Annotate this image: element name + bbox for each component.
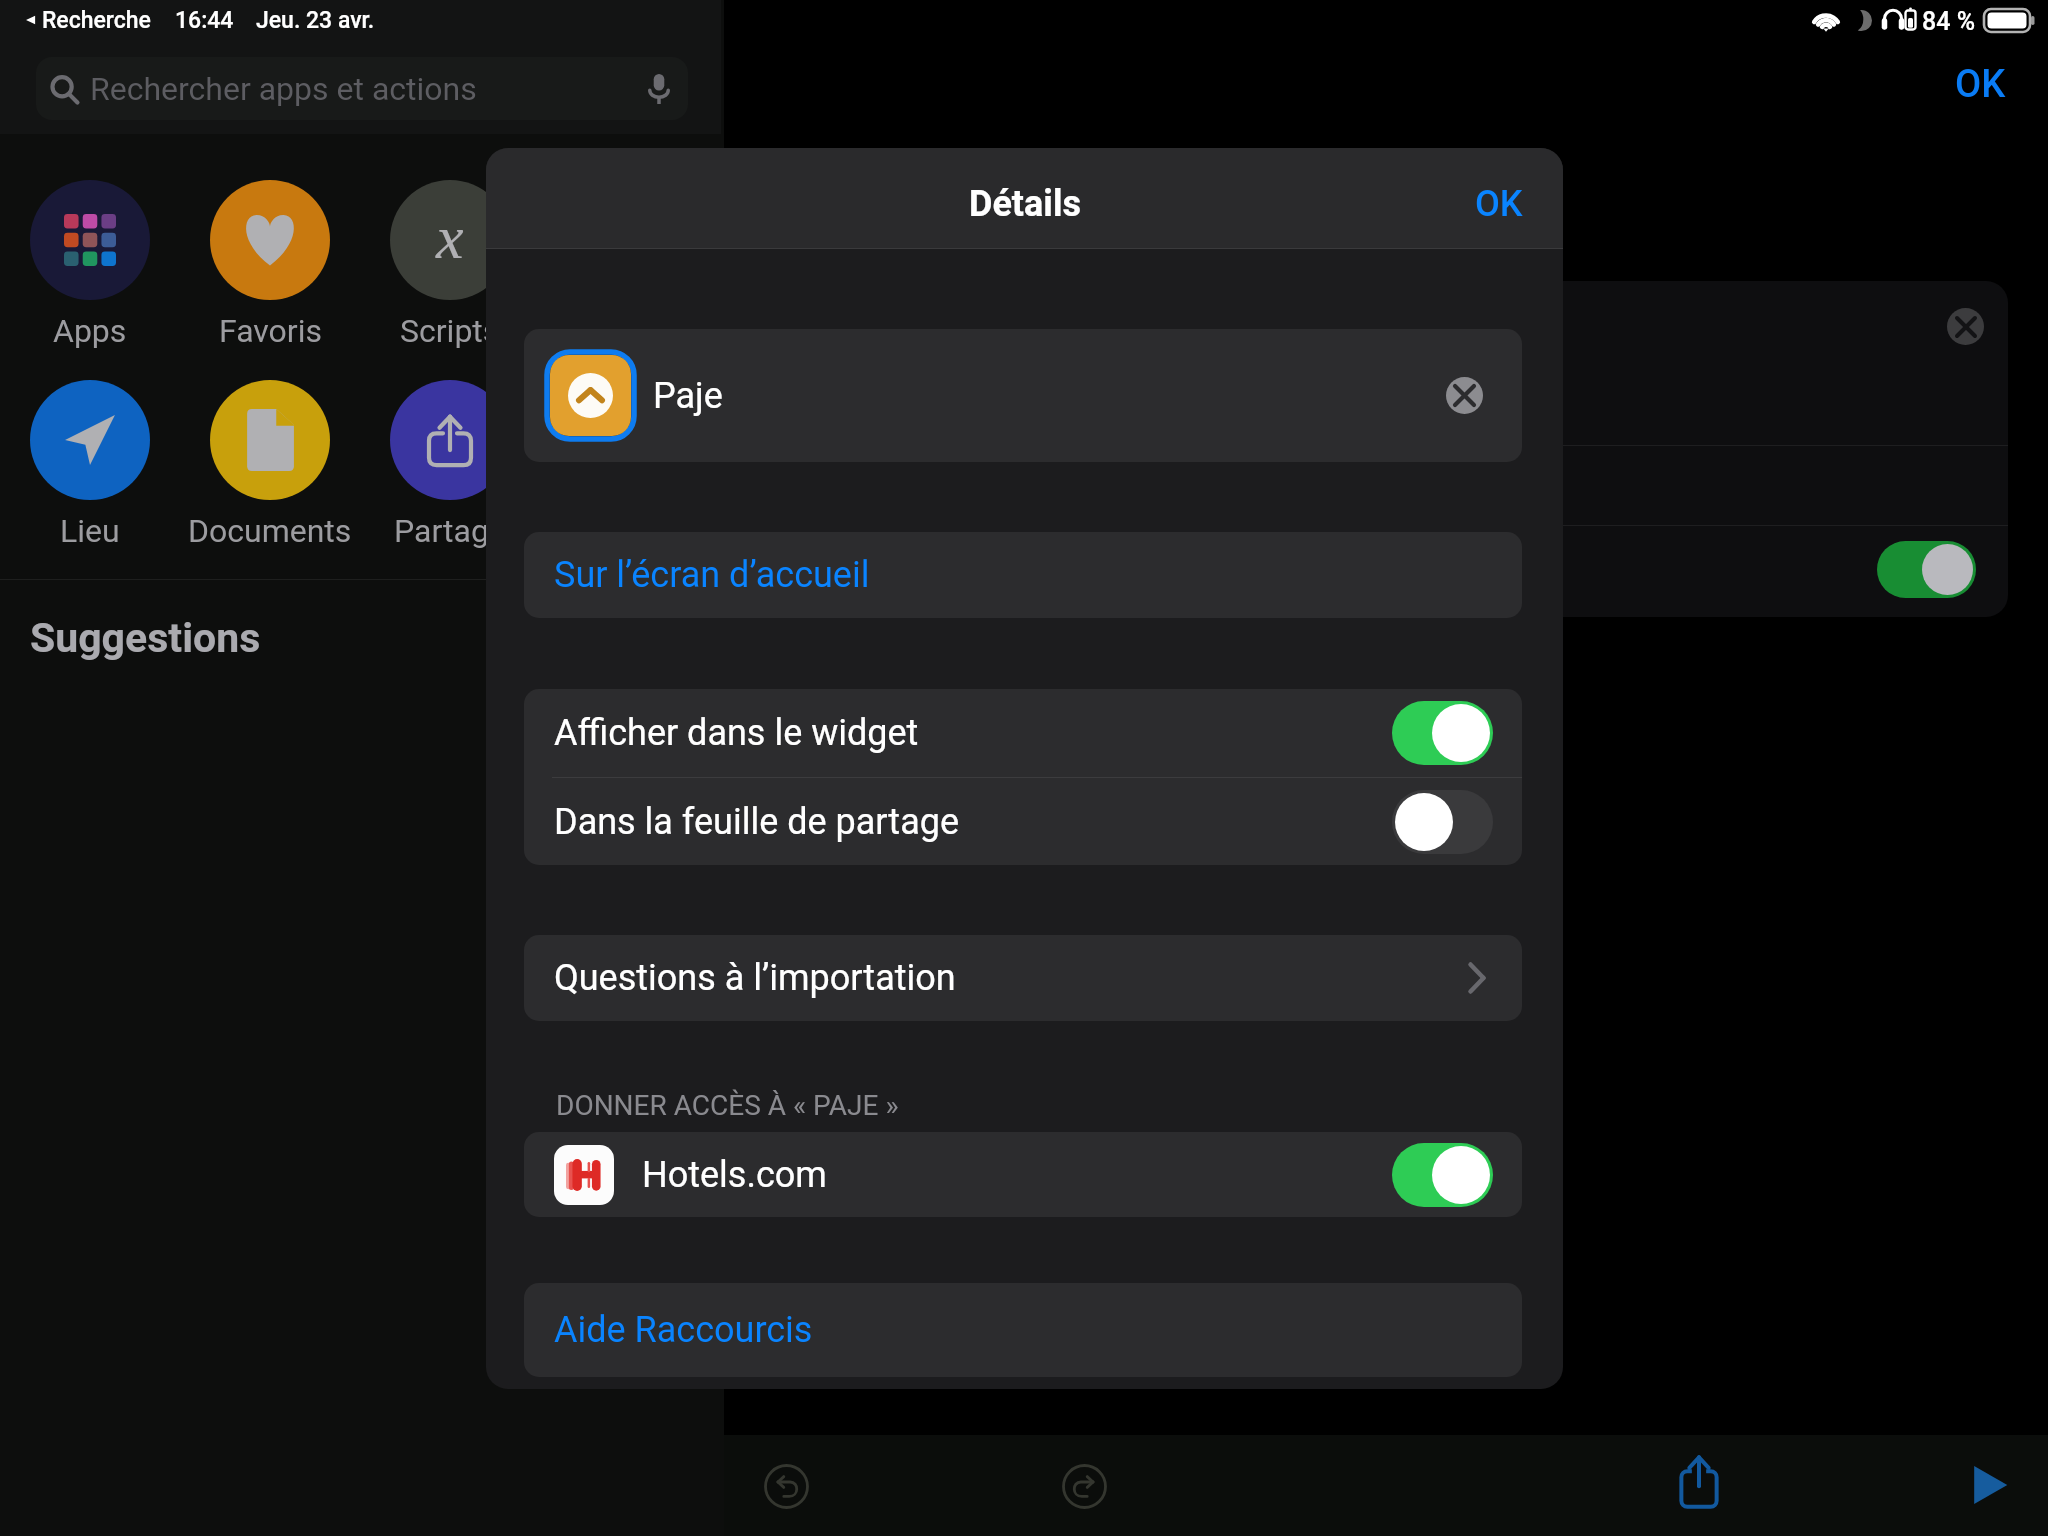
button[interactable]: Rétablir [1062, 1464, 1107, 1509]
button[interactable]: Hotels.com [524, 1132, 1522, 1217]
staticText: Suggestions [30, 614, 261, 662]
button[interactable]: Rechercher apps et actions [36, 57, 688, 120]
button[interactable]: x [360, 180, 540, 350]
button[interactable]: Documents [180, 380, 360, 550]
staticText: Afficher dans le widget [554, 712, 919, 754]
button[interactable]: Activé [1392, 701, 1493, 765]
staticText: Sur l’écran d’accueil [554, 554, 870, 596]
staticText: Favoris [219, 312, 322, 350]
staticText: OK [1955, 62, 2006, 107]
staticText: Recherche [42, 7, 151, 34]
staticText: Lieu [60, 512, 120, 550]
button[interactable]: OK [1955, 62, 2006, 107]
button[interactable]: Lieu [0, 380, 180, 550]
button[interactable]: Partager [1669, 1452, 1729, 1512]
button[interactable]: Désactivé [1392, 790, 1493, 854]
staticText: Détails [969, 183, 1081, 225]
button[interactable]: Effacer [1446, 377, 1483, 414]
staticText: x [436, 203, 464, 272]
button[interactable]: Favoris [180, 180, 360, 350]
staticText: Paje [653, 375, 723, 417]
staticText: Documents [188, 512, 352, 550]
staticText: Dans la feuille de partage [554, 801, 960, 843]
button[interactable]: Aide Raccourcis [524, 1283, 1522, 1377]
button[interactable]: Partage [360, 380, 540, 550]
button[interactable]: Effacer [1947, 308, 1984, 345]
button[interactable]: Activé [1392, 1143, 1493, 1207]
button[interactable]: Sur l’écran d’accueil [524, 532, 1522, 618]
button[interactable]: Apps [0, 180, 180, 350]
staticText: Hotels.com [642, 1154, 827, 1196]
staticText: Aide Raccourcis [554, 1309, 813, 1351]
staticText: Apps [53, 312, 127, 350]
staticText: 84 % [1922, 7, 1976, 36]
button[interactable]: Paje [524, 329, 1522, 462]
button[interactable]: Afficher dans le widget [554, 689, 1493, 777]
button[interactable]: Activé [1877, 541, 1976, 598]
staticText: Scripts [400, 312, 500, 350]
staticText: 16:44 [175, 7, 234, 34]
staticText: Jeu. 23 avr. [256, 7, 375, 34]
staticText: Partage [394, 512, 506, 550]
button[interactable]: Annuler [764, 1464, 809, 1509]
button[interactable]: Questions à l’importation [524, 935, 1522, 1021]
button[interactable]: Lancer [1960, 1455, 2020, 1515]
staticText: DONNER ACCÈS À « PAJE » [556, 1089, 899, 1122]
button[interactable]: Dans la feuille de partage [554, 778, 1493, 865]
staticText: OK [1475, 183, 1523, 225]
staticText: Questions à l’importation [554, 957, 956, 999]
button[interactable]: OK [1475, 183, 1523, 225]
staticText: Rechercher apps et actions [90, 70, 477, 108]
